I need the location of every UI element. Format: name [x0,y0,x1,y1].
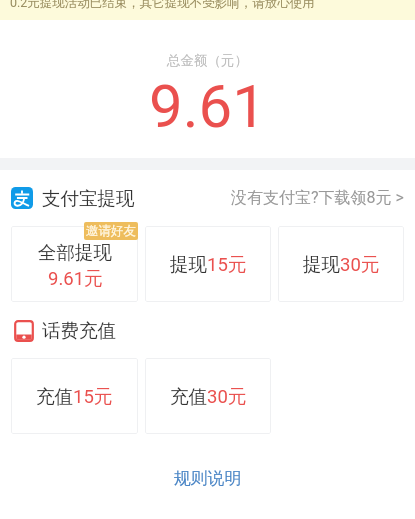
staticText: 全部提现 [38,241,112,264]
button[interactable]: 全部提现 [11,226,138,302]
staticText: 充值30元 [170,385,247,408]
staticText: 充值15元 [36,385,113,408]
other: Alipay [11,187,33,209]
button[interactable]: 规则说明 [0,464,415,493]
staticText: 话费充值 [42,319,116,342]
staticText: 支付宝提现 [42,187,135,210]
staticText: 提现15元 [170,253,247,276]
staticText: 9.61元 [48,267,103,290]
staticText: 总金额（元） [0,52,415,69]
staticText: 9.61 [0,71,415,141]
staticText: 提现30元 [303,253,380,276]
other: Phone recharge [13,320,35,342]
button[interactable]: 提现15元 [145,226,271,302]
button[interactable]: 提现30元 [278,226,404,302]
button[interactable]: 充值30元 [145,358,271,434]
button[interactable]: 没有支付宝?下载领8元 > [231,188,404,208]
button[interactable]: 充值15元 [11,358,138,434]
staticText: 0.2元提现活动已结束，其它提现不受影响，请放心使用 [10,0,315,11]
staticText: 没有支付宝?下载领8元 > [231,188,404,208]
staticText: 邀请好友 [86,223,136,239]
